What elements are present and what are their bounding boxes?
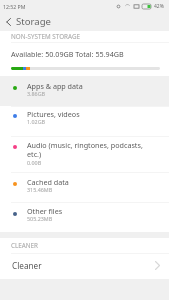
staticText: 12:52 PM [3,3,26,10]
staticText: Pictures, videos [27,109,80,119]
staticText: 505.23MB [27,215,53,222]
button[interactable]: Cached data [0,173,169,202]
button[interactable]: Pictures, videos [0,107,169,136]
staticText: NON-SYSTEM STORAGE [11,32,80,41]
staticText: Available: 50.09GB Total: 55.94GB [11,49,124,59]
button[interactable]: Audio (music, ringtones, podcasts, etc.) [0,137,169,172]
staticText: Cleaner [12,260,42,271]
staticText: 3.86GB [27,90,46,97]
staticText: Other files [27,206,63,216]
staticText: 0.00B [27,159,42,166]
staticText: Audio (music, ringtones, podcasts, etc.) [27,140,152,159]
button[interactable]: Other files [0,203,169,232]
staticText: Cached data [27,177,69,187]
staticText: 42% [154,3,164,10]
staticText: 1.02GB [27,118,46,125]
staticText: 315.46MB [27,186,53,193]
button[interactable]: Back [0,12,16,31]
staticText: Storage [16,15,51,28]
button[interactable]: Cleaner [0,254,169,279]
staticText: Apps & app data [27,81,83,91]
staticText: CLEANER [11,241,39,250]
button[interactable]: Apps & app data [0,76,169,106]
